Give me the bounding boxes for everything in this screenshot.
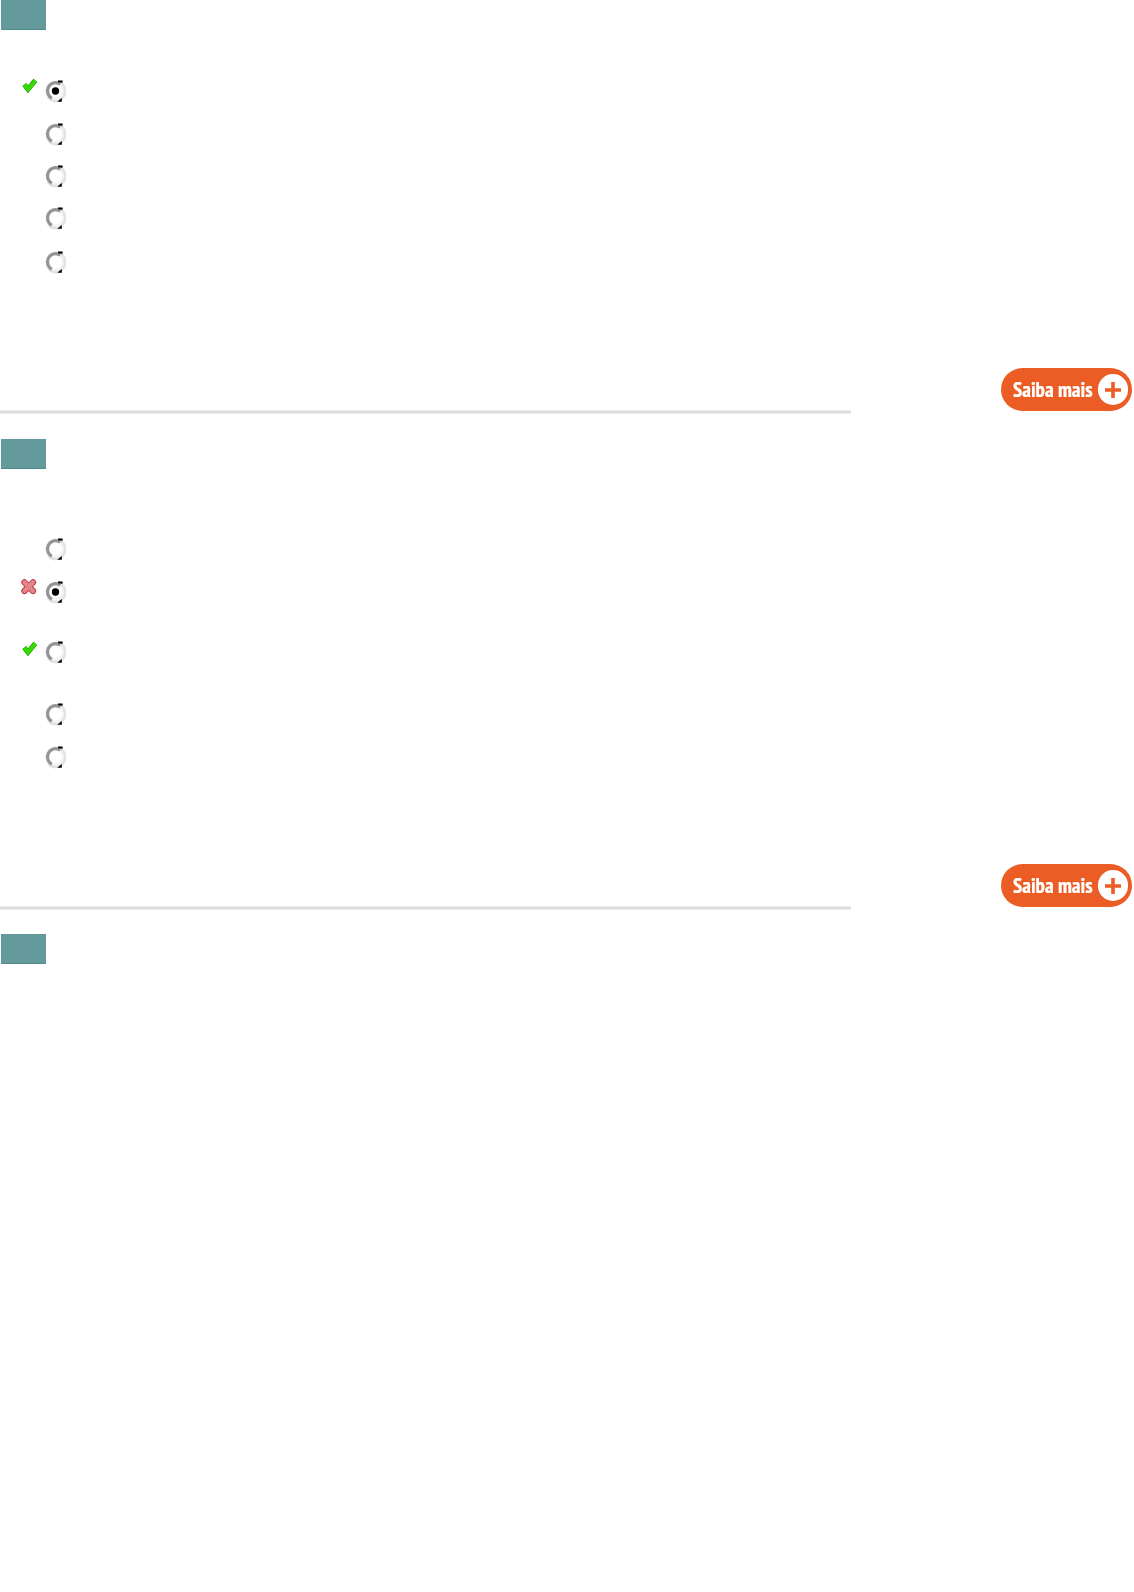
button[interactable]: Answer option: [18, 702, 68, 725]
button[interactable]: Answer option: [18, 122, 68, 145]
button[interactable]: Saiba mais: [1001, 864, 1132, 907]
button[interactable]: Saiba mais: [1001, 368, 1132, 411]
button[interactable]: Answer option: [18, 250, 68, 273]
button[interactable]: Section heading: [1, 0, 46, 30]
button[interactable]: Answer option: [18, 537, 68, 560]
staticText: Saiba mais: [1013, 872, 1093, 899]
button[interactable]: Answer option: [18, 164, 68, 187]
button[interactable]: Correct answer: [18, 640, 68, 663]
button[interactable]: Answer option: [18, 745, 68, 768]
button[interactable]: Wrong answer, selected: [18, 580, 68, 603]
button[interactable]: Section heading: [1, 439, 46, 469]
staticText: Saiba mais: [1013, 376, 1093, 403]
button[interactable]: Answer option: [18, 206, 68, 229]
button[interactable]: Section heading: [1, 934, 46, 964]
button[interactable]: Correct answer, selected: [18, 79, 68, 102]
